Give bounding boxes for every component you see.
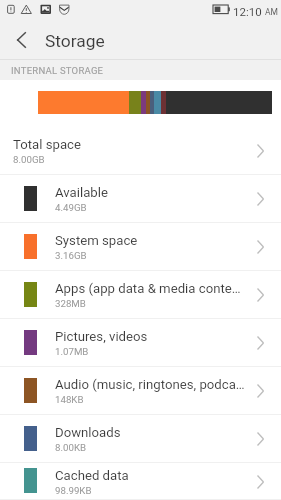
staticText: Audio (music, ringtones, podca…	[55, 377, 245, 392]
button[interactable]: Total space	[0, 127, 281, 175]
staticText: 328MB	[55, 298, 86, 309]
staticText: 8.00KB	[55, 442, 87, 453]
staticText: 98.99KB	[55, 485, 92, 496]
staticText: 1.07MB	[55, 346, 89, 357]
staticText: Downloads	[55, 425, 121, 440]
staticText: 148KB	[55, 394, 84, 405]
staticText: 3.16GB	[55, 250, 87, 261]
button[interactable]: Available	[0, 175, 281, 223]
button[interactable]: Pictures, videos	[0, 319, 281, 367]
button[interactable]: System space	[0, 223, 281, 271]
button[interactable]: Audio (music, ringtones, podca…	[0, 367, 281, 415]
staticText: 4.49GB	[55, 202, 87, 213]
staticText: Cached data	[55, 468, 129, 483]
staticText: AM	[265, 7, 278, 17]
staticText: Storage	[45, 31, 105, 51]
button[interactable]: Apps (app data & media conte…	[0, 271, 281, 319]
button[interactable]: Back	[0, 22, 38, 60]
staticText: Total space	[13, 137, 81, 152]
staticText: Pictures, videos	[55, 329, 148, 344]
staticText: 8.00GB	[13, 154, 45, 165]
staticText: System space	[55, 233, 138, 248]
staticText: Available	[55, 185, 108, 200]
staticText: 12:10	[233, 5, 262, 18]
button[interactable]: Cached data	[0, 463, 281, 500]
staticText: Apps (app data & media conte…	[55, 281, 241, 296]
button[interactable]: Downloads	[0, 415, 281, 463]
staticText: INTERNAL STORAGE	[11, 65, 104, 76]
